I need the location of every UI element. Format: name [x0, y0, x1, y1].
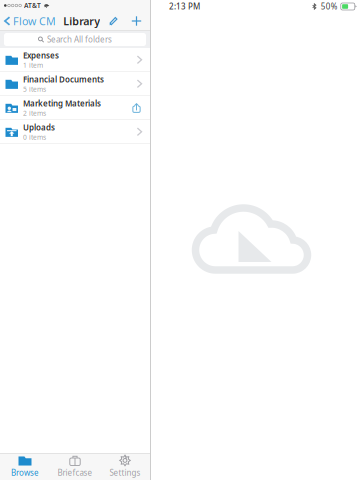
- button[interactable]: Edit: [107, 16, 122, 26]
- staticText: 2 items: [23, 109, 46, 117]
- staticText: Briefcase: [57, 467, 92, 478]
- staticText: Uploads: [23, 122, 55, 133]
- staticText: Library: [63, 14, 100, 28]
- button[interactable]: New folder: [122, 15, 142, 26]
- button[interactable]: Uploads: [0, 120, 150, 143]
- staticText: 1 item: [23, 61, 43, 69]
- staticText: Marketing Materials: [23, 98, 101, 109]
- button[interactable]: Flow CM: [0, 12, 56, 30]
- button[interactable]: Expenses: [0, 48, 150, 71]
- button[interactable]: Financial Documents: [0, 72, 150, 95]
- staticText: Browse: [11, 467, 39, 478]
- staticText: 0 items: [23, 133, 46, 141]
- staticText: Flow CM: [13, 14, 56, 28]
- staticText: 2:13 PM: [169, 1, 200, 12]
- staticText: 5 items: [23, 85, 46, 93]
- button[interactable]: Briefcase: [50, 453, 100, 480]
- staticText: Expenses: [23, 50, 59, 61]
- staticText: 50%: [321, 1, 338, 12]
- button[interactable]: Marketing Materials: [0, 96, 150, 119]
- staticText: Settings: [109, 467, 140, 478]
- staticText: Financial Documents: [23, 74, 104, 85]
- button[interactable]: Browse: [0, 453, 50, 480]
- staticText: Search All folders: [47, 34, 112, 45]
- button[interactable]: Settings: [100, 453, 150, 480]
- staticText: AT&T: [24, 1, 41, 10]
